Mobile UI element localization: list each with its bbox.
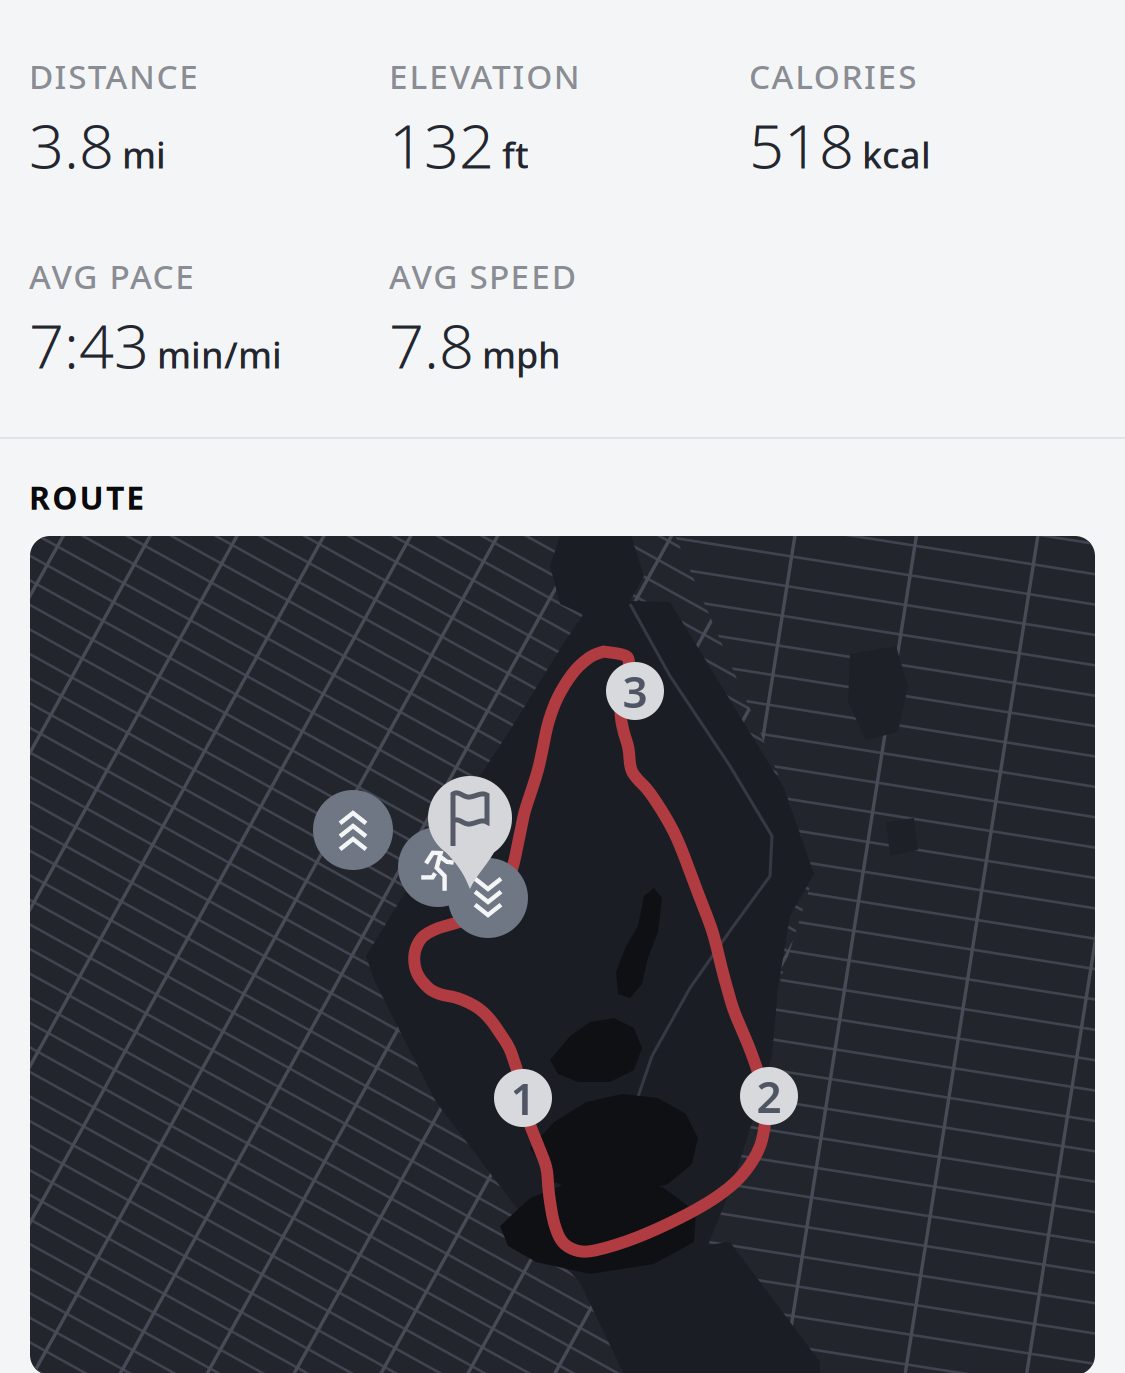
staticText: AVG SPEED — [389, 254, 576, 298]
staticText: mph — [482, 331, 561, 378]
staticText: ROUTE — [29, 476, 144, 518]
staticText: DISTANCE — [29, 54, 198, 98]
staticText: CALORIES — [749, 54, 916, 98]
button[interactable]: Elevation loss — [448, 858, 528, 938]
staticText: ELEVATION — [389, 54, 580, 98]
staticText: ft — [502, 131, 529, 178]
button[interactable]: Elevation gain — [313, 790, 393, 870]
staticText: 2 — [756, 1067, 781, 1125]
staticText: AVG PACE — [29, 254, 194, 298]
staticText: kcal — [862, 131, 931, 178]
staticText: mi — [122, 131, 166, 178]
staticText: 3.8 — [29, 104, 114, 185]
staticText: 518 — [749, 104, 854, 185]
staticText: 7:43 — [29, 304, 149, 385]
staticText: 3 — [622, 662, 647, 720]
button[interactable]: Route map — [30, 536, 1095, 1373]
button[interactable]: Mile 3 — [606, 662, 664, 720]
staticText: 1 — [510, 1069, 535, 1127]
staticText: min/mi — [157, 331, 282, 378]
staticText: 132 — [389, 104, 494, 185]
button[interactable]: Start — [428, 776, 512, 889]
button[interactable]: Mile 2 — [740, 1067, 798, 1125]
button[interactable]: Mile 1 — [494, 1069, 552, 1127]
staticText: 7.8 — [389, 304, 474, 385]
button[interactable]: Workout type — [398, 827, 478, 907]
